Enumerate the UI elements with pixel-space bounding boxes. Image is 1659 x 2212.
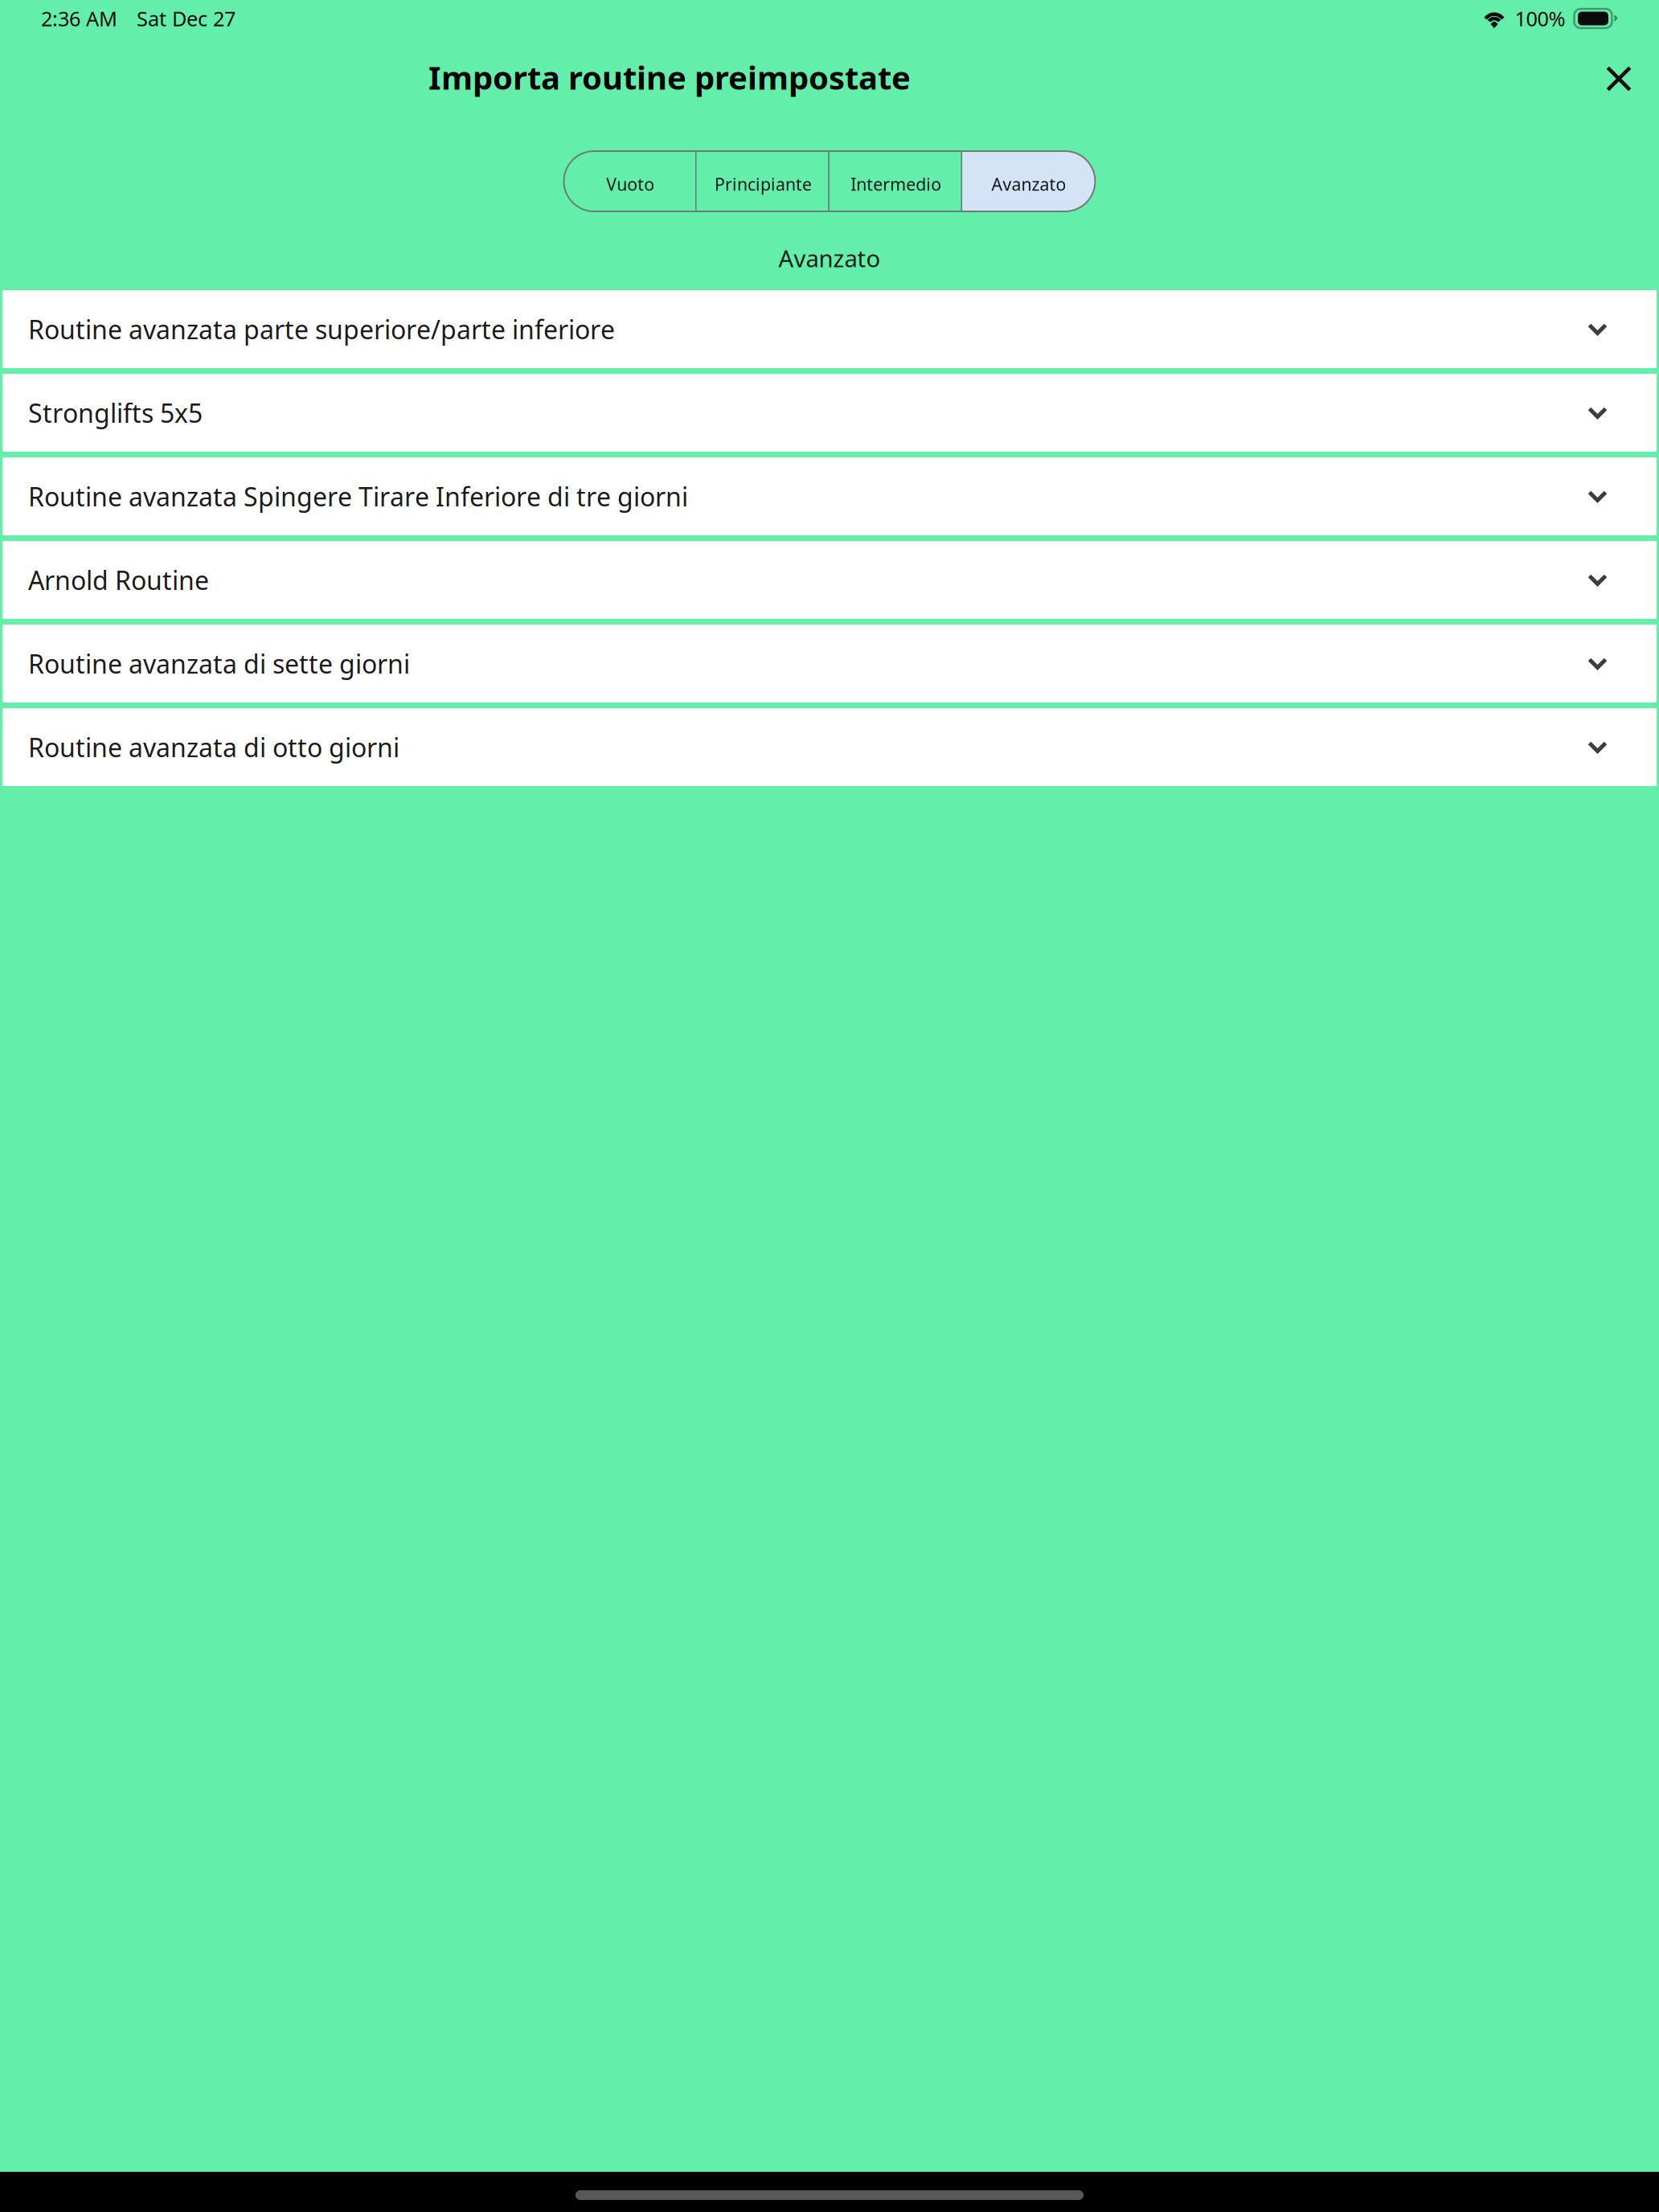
button[interactable]: Routine avanzata di sette giorni bbox=[2, 625, 1657, 703]
staticText: Routine avanzata di sette giorni bbox=[28, 646, 410, 681]
button[interactable]: Principiante bbox=[697, 151, 829, 211]
staticText: Stronglifts 5x5 bbox=[28, 396, 203, 430]
staticText: Routine avanzata Spingere Tirare Inferio… bbox=[28, 479, 688, 513]
staticText: 2:36 AM bbox=[41, 5, 117, 32]
staticText: Routine avanzata di otto giorni bbox=[28, 730, 399, 764]
button[interactable]: Intermedio bbox=[829, 151, 962, 211]
button[interactable]: Stronglifts 5x5 bbox=[2, 374, 1657, 452]
staticText: Vuoto bbox=[606, 173, 654, 195]
button[interactable]: Routine avanzata parte superiore/parte i… bbox=[2, 290, 1657, 368]
staticText: Avanzato bbox=[991, 173, 1066, 195]
staticText: 100% bbox=[1515, 5, 1565, 32]
staticText: Avanzato bbox=[778, 242, 881, 274]
staticText: Arnold Routine bbox=[28, 563, 209, 597]
button[interactable]: Routine avanzata Spingere Tirare Inferio… bbox=[2, 457, 1657, 535]
staticText: Sat Dec 27 bbox=[137, 5, 236, 32]
button[interactable]: Routine avanzata di otto giorni bbox=[2, 708, 1657, 786]
staticText: Intermedio bbox=[850, 173, 941, 195]
button[interactable]: Arnold Routine bbox=[2, 541, 1657, 619]
button[interactable]: Avanzato bbox=[962, 151, 1095, 211]
staticText: Importa routine preimpostate bbox=[428, 56, 911, 98]
button[interactable]: Chiudi bbox=[1588, 48, 1659, 106]
staticText: Routine avanzata parte superiore/parte i… bbox=[28, 312, 615, 346]
staticText: Principiante bbox=[714, 173, 812, 195]
button[interactable]: Vuoto bbox=[564, 151, 697, 211]
